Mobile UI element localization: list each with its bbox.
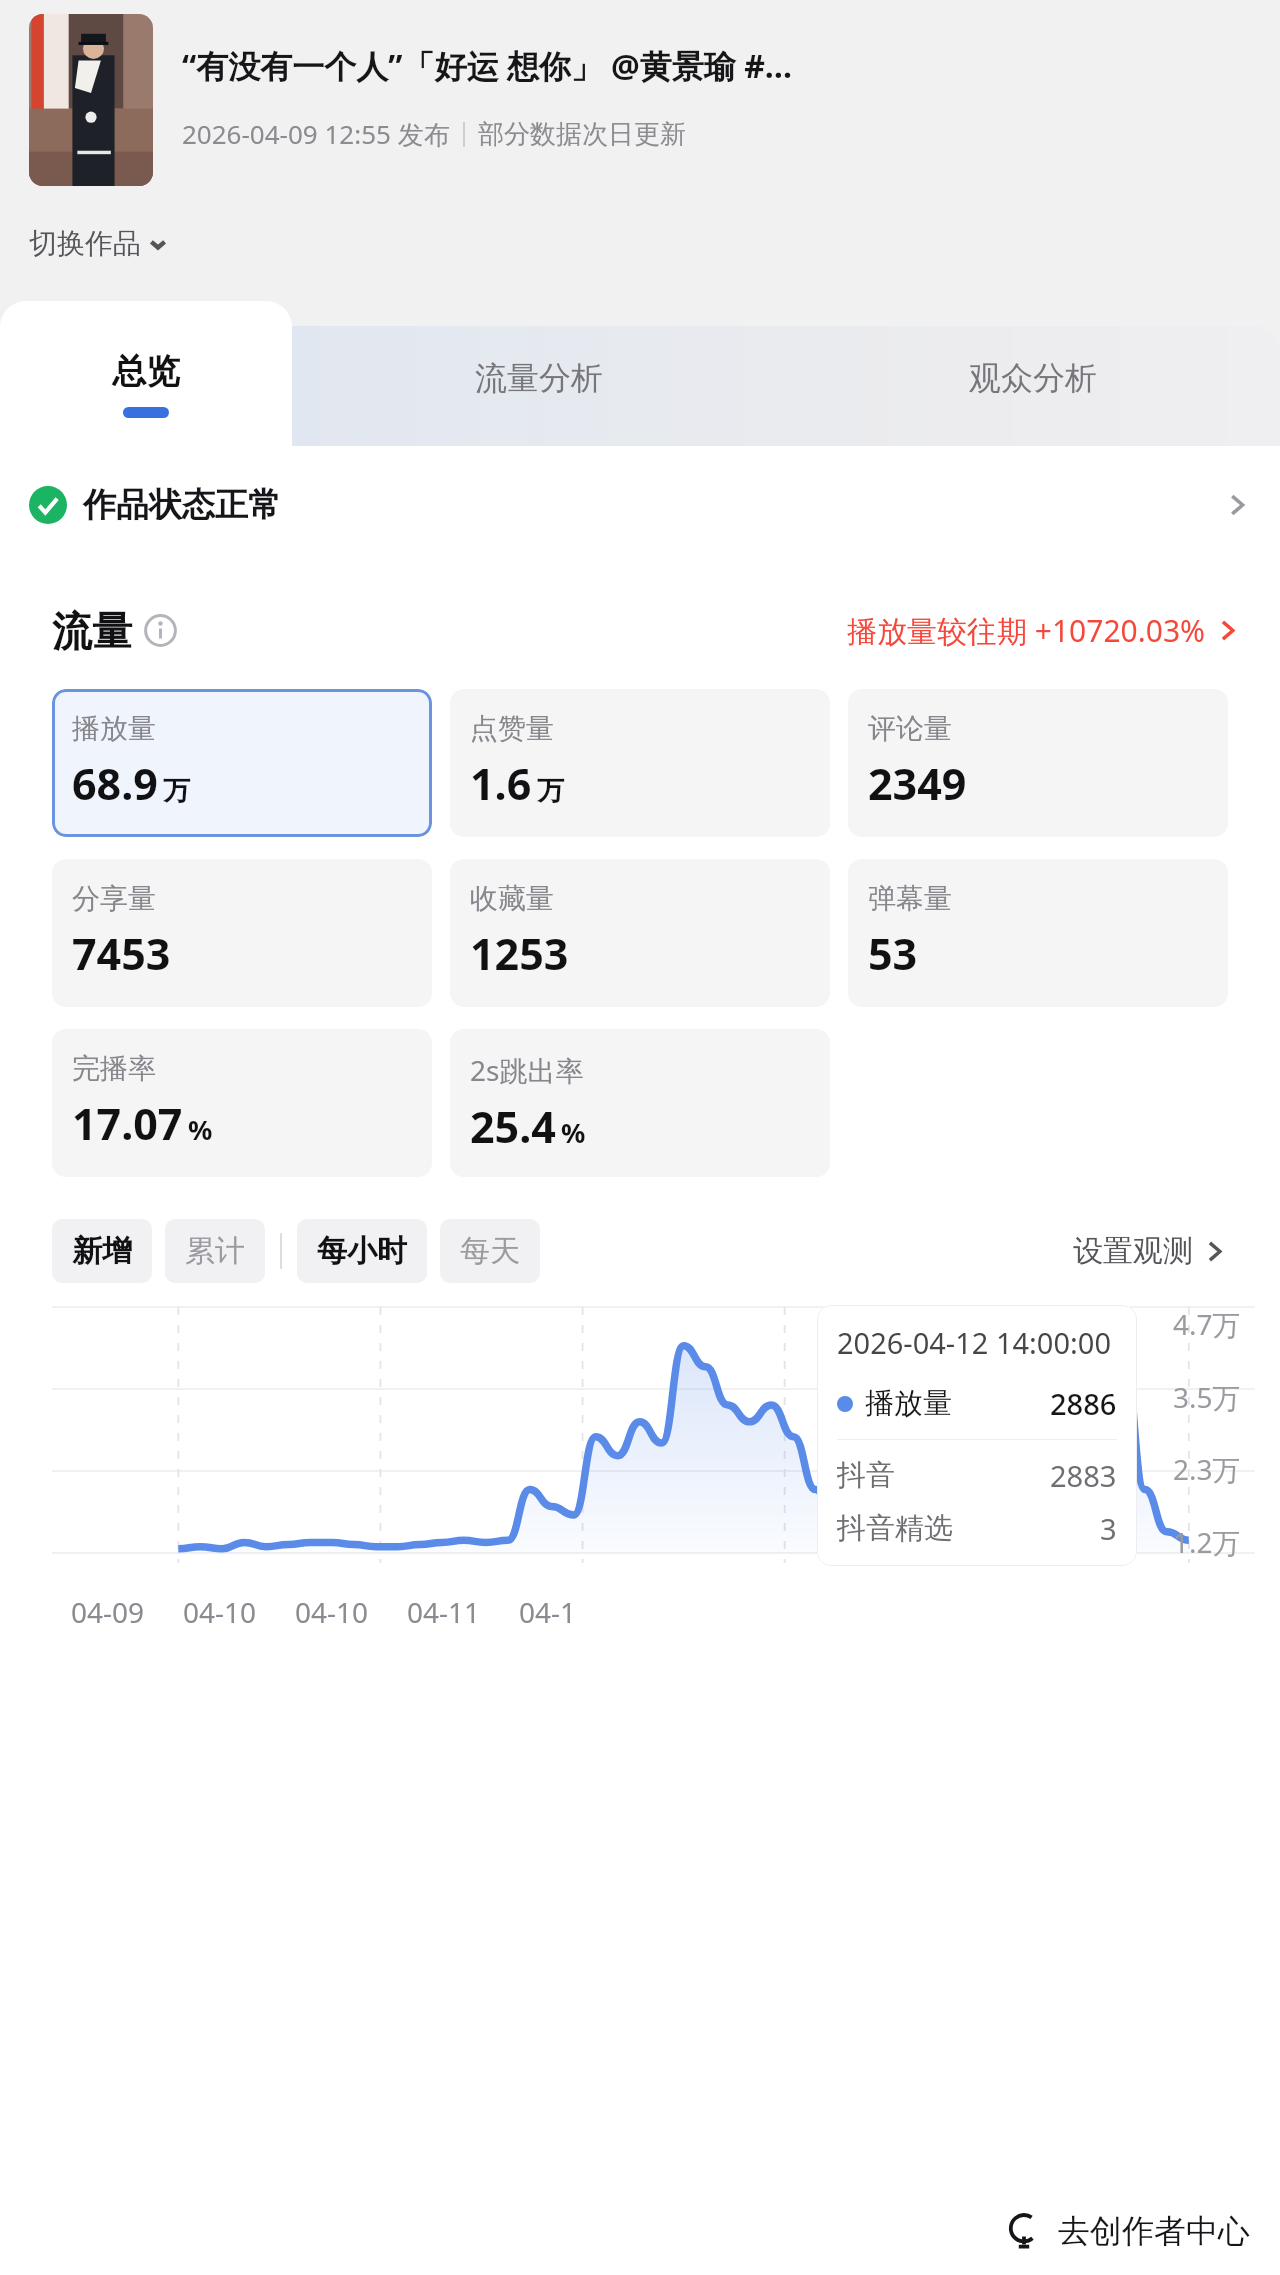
button[interactable]: 收藏量	[450, 859, 830, 1007]
staticText: 完播率	[72, 1051, 156, 1086]
staticText: 2349	[868, 754, 967, 813]
staticText: 2026-04-09 12:55 发布	[182, 116, 450, 152]
staticText: 17.07	[72, 1094, 183, 1153]
button[interactable]: 点赞量	[450, 689, 830, 837]
staticText: 7453	[72, 924, 171, 983]
staticText: 04-10	[295, 1593, 369, 1631]
staticText: 切换作品	[29, 226, 141, 261]
button[interactable]: 播放量较往期 +10720.03%	[847, 604, 1241, 657]
staticText: 设置观测	[1073, 1232, 1193, 1270]
staticText: 去创作者中心	[1058, 2211, 1250, 2251]
staticText: 收藏量	[470, 881, 554, 916]
staticText: 25.4	[470, 1097, 556, 1156]
button[interactable]: 累计	[165, 1219, 265, 1283]
staticText: 3.5万	[1173, 1378, 1241, 1416]
button[interactable]: 流量分析	[292, 326, 786, 446]
button[interactable]: 完播率	[52, 1029, 432, 1177]
staticText: 2.3万	[1173, 1450, 1241, 1488]
staticText: 播放量较往期 +10720.03%	[847, 610, 1206, 651]
button[interactable]: 观众分析	[786, 326, 1280, 446]
staticText: 部分数据次日更新	[478, 118, 686, 151]
staticText: 04-11	[407, 1593, 481, 1631]
staticText: 53	[868, 924, 918, 983]
staticText: 新增	[72, 1232, 132, 1270]
staticText: 累计	[185, 1232, 245, 1270]
button[interactable]: 设置观测	[1073, 1226, 1228, 1276]
staticText: 2026-04-12 14:00:00	[837, 1323, 1111, 1362]
staticText: 弹幕量	[868, 881, 952, 916]
button[interactable]: 新增	[52, 1219, 152, 1283]
staticText: 作品状态正常	[83, 484, 281, 526]
staticText: “有没有一个人”「好运 想你」 @黄景瑜 #…	[182, 44, 793, 88]
button[interactable]: 总览	[0, 301, 292, 446]
staticText: 总览	[112, 350, 180, 393]
staticText: 1.2万	[1173, 1523, 1241, 1561]
staticText: 万	[537, 774, 564, 808]
button[interactable]: 播放量	[52, 689, 432, 837]
staticText: 流量分析	[475, 358, 603, 398]
button[interactable]: 每天	[440, 1219, 540, 1283]
button[interactable]: 分享量	[52, 859, 432, 1007]
button[interactable]: 弹幕量	[848, 859, 1228, 1007]
staticText: 1.6	[470, 754, 532, 813]
staticText: 68.9	[72, 754, 158, 813]
staticText: 2886	[1050, 1384, 1117, 1423]
button[interactable]: 流量说明	[144, 614, 177, 647]
button[interactable]: 每小时	[297, 1219, 427, 1283]
staticText: 评论量	[868, 711, 952, 746]
staticText: 每小时	[317, 1232, 407, 1270]
staticText: 抖音精选	[837, 1510, 953, 1547]
staticText: 每天	[460, 1232, 520, 1270]
button[interactable]: 作品状态正常	[0, 446, 1280, 564]
staticText: 1253	[470, 924, 569, 983]
staticText: 4.7万	[1173, 1305, 1241, 1343]
staticText: 04-09	[71, 1593, 145, 1631]
staticText: 播放量	[72, 711, 156, 746]
staticText: 分享量	[72, 881, 156, 916]
button[interactable]: 作品封面	[29, 14, 153, 186]
button[interactable]: 去创作者中心	[978, 2187, 1280, 2275]
staticText: 04-1	[519, 1593, 577, 1631]
staticText: 流量	[52, 606, 132, 656]
staticText: 点赞量	[470, 711, 554, 746]
staticText: 观众分析	[969, 358, 1097, 398]
staticText: 万	[163, 774, 190, 808]
staticText: 播放量	[865, 1385, 952, 1422]
button[interactable]: 2s跳出率	[450, 1029, 830, 1177]
staticText: 2s跳出率	[470, 1051, 584, 1089]
staticText: %	[188, 1111, 213, 1148]
button[interactable]: 评论量	[848, 689, 1228, 837]
staticText: 抖音	[837, 1457, 895, 1494]
button[interactable]: 切换作品	[27, 222, 171, 265]
staticText: 04-10	[183, 1593, 257, 1631]
staticText: 2883	[1050, 1456, 1117, 1495]
staticText: %	[561, 1114, 586, 1151]
staticText: 3	[1100, 1509, 1117, 1548]
